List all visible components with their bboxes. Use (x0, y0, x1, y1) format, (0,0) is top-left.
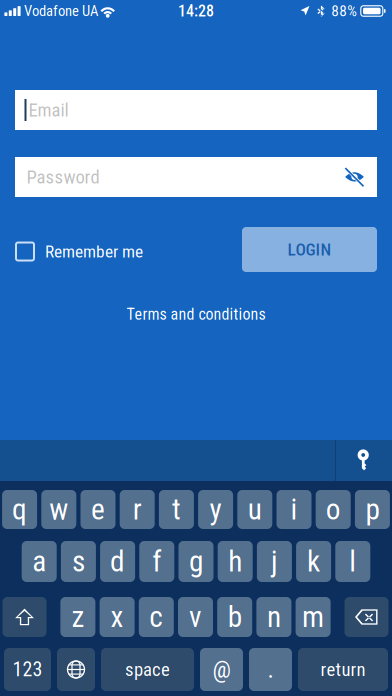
staticText: e (91, 492, 105, 527)
button[interactable]: f (139, 541, 174, 582)
button[interactable]: space (101, 648, 194, 691)
staticText: u (248, 492, 262, 527)
button[interactable]: i (276, 490, 311, 529)
button[interactable]: q (2, 490, 37, 529)
button[interactable]: m (296, 597, 331, 637)
staticText: c (149, 600, 163, 634)
button[interactable]: t (159, 490, 194, 529)
staticText: k (307, 544, 320, 579)
button[interactable]: p (355, 490, 390, 529)
staticText: p (365, 492, 379, 527)
button[interactable]: 123 (4, 648, 51, 691)
staticText: space (125, 659, 170, 680)
button[interactable]: Passwords (336, 440, 392, 481)
button[interactable]: w (41, 490, 76, 529)
staticText: z (71, 600, 84, 634)
button[interactable]: c (139, 597, 174, 637)
button[interactable]: y (198, 490, 233, 529)
button[interactable]: LOGIN (242, 227, 377, 272)
staticText: l (349, 544, 356, 579)
staticText: . (267, 655, 273, 683)
button[interactable]: h (218, 541, 253, 582)
button[interactable]: n (256, 597, 291, 637)
staticText: s (72, 544, 85, 579)
button[interactable]: Password (15, 157, 377, 197)
staticText: x (111, 600, 124, 634)
staticText: t (172, 492, 181, 527)
button[interactable]: d (100, 541, 135, 582)
staticText: j (271, 544, 278, 579)
staticText: i (290, 492, 297, 527)
button[interactable]: g (178, 541, 213, 582)
staticText: q (12, 492, 27, 527)
staticText: Email (28, 99, 68, 121)
button[interactable]: a (22, 541, 57, 582)
staticText: Vodafone UA (24, 2, 98, 20)
button[interactable]: Terms and conditions (108, 297, 283, 332)
button[interactable]: j (257, 541, 292, 582)
button[interactable]: e (80, 490, 115, 529)
staticText: LOGIN (287, 239, 331, 260)
staticText: 88% (331, 2, 357, 20)
staticText: return (320, 659, 365, 680)
staticText: y (210, 492, 222, 527)
staticText: f (152, 544, 161, 579)
staticText: a (32, 544, 46, 579)
button[interactable]: k (296, 541, 331, 582)
button[interactable]: x (100, 597, 135, 637)
button[interactable]: Remember me (16, 232, 143, 271)
staticText: r (133, 492, 142, 527)
button[interactable]: v (178, 597, 213, 637)
button[interactable]: s (61, 541, 96, 582)
staticText: n (267, 600, 281, 634)
button[interactable]: b (217, 597, 252, 637)
staticText: 14:28 (178, 2, 214, 20)
staticText: v (189, 600, 202, 634)
button[interactable]: l (335, 541, 370, 582)
button[interactable]: Shift (2, 597, 46, 637)
button[interactable]: Next keyboard (57, 648, 95, 691)
button[interactable]: Email (15, 90, 377, 130)
staticText: Password (26, 166, 99, 188)
staticText: d (110, 544, 125, 579)
staticText: b (228, 600, 242, 634)
button[interactable]: r (120, 490, 155, 529)
button[interactable]: . (249, 648, 292, 691)
button[interactable]: z (60, 597, 95, 637)
staticText: m (302, 600, 324, 634)
staticText: g (189, 544, 203, 579)
staticText: h (228, 544, 242, 579)
staticText: 123 (12, 658, 42, 681)
staticText: Remember me (45, 241, 143, 262)
button[interactable]: return (298, 648, 388, 691)
button[interactable]: o (316, 490, 351, 529)
button[interactable]: Delete (344, 597, 388, 637)
staticText: Terms and conditions (126, 305, 265, 324)
staticText: @ (212, 655, 230, 683)
button[interactable]: u (237, 490, 272, 529)
button[interactable]: @ (200, 648, 243, 691)
staticText: w (49, 492, 68, 527)
staticText: o (326, 492, 341, 527)
